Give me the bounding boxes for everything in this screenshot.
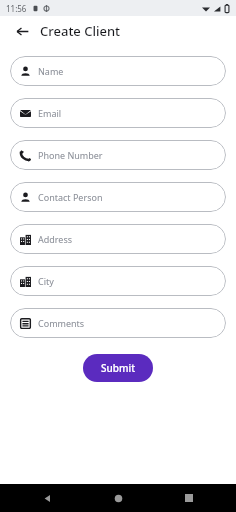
- staticText: Email: [38, 107, 62, 119]
- button[interactable]: Comments: [10, 308, 226, 338]
- button[interactable]: Contact Person: [10, 182, 226, 212]
- staticText: Submit: [101, 361, 135, 375]
- button[interactable]: Back: [10, 19, 34, 43]
- staticText: Phone Number: [38, 149, 103, 161]
- button[interactable]: Phone Number: [10, 140, 226, 170]
- staticText: Comments: [38, 317, 85, 329]
- button[interactable]: Address: [10, 224, 226, 254]
- button[interactable]: Home: [107, 487, 129, 509]
- staticText: 11:56: [6, 3, 27, 14]
- button[interactable]: Name: [10, 56, 226, 86]
- button[interactable]: Recent apps: [178, 487, 200, 509]
- staticText: Address: [38, 233, 73, 245]
- staticText: City: [38, 275, 54, 287]
- button[interactable]: City: [10, 266, 226, 296]
- button[interactable]: Email: [10, 98, 226, 128]
- staticText: Contact Person: [38, 191, 103, 203]
- button[interactable]: Back: [36, 487, 58, 509]
- staticText: Name: [38, 65, 64, 77]
- staticText: Create Client: [40, 22, 121, 40]
- button[interactable]: Submit: [83, 354, 153, 382]
